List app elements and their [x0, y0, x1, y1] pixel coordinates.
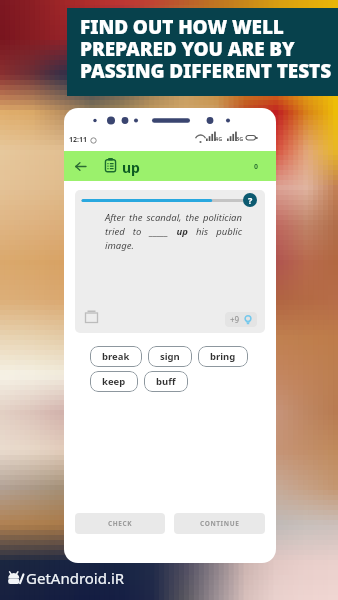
staticText: GetAndroid.iR: [26, 568, 125, 588]
staticText: sign: [160, 350, 180, 363]
staticText: break: [102, 350, 130, 363]
staticText: 4G: [215, 135, 223, 142]
button[interactable]: Help: [243, 193, 257, 207]
button[interactable]: keep: [90, 371, 138, 392]
button[interactable]: bring: [198, 346, 248, 367]
staticText: 12:11: [69, 135, 87, 145]
button[interactable]: +9: [225, 312, 257, 327]
staticText: After the scandal, the politician tried …: [105, 211, 242, 252]
button[interactable]: CONTINUE: [174, 513, 265, 534]
button[interactable]: CHECK: [75, 513, 165, 534]
staticText: keep: [102, 375, 126, 388]
staticText: PASSING DIFFERENT TESTS: [80, 58, 332, 84]
button[interactable]: break: [90, 346, 142, 367]
staticText: CHECK: [108, 519, 133, 528]
button[interactable]: Back: [72, 158, 88, 174]
staticText: +9: [230, 314, 240, 325]
staticText: CONTINUE: [200, 519, 240, 528]
staticText: ?: [248, 194, 253, 206]
staticText: 0: [254, 162, 259, 172]
staticText: 3G: [236, 135, 244, 142]
staticText: PREPARED YOU ARE BY: [80, 36, 295, 62]
staticText: bring: [210, 350, 236, 363]
staticText: FIND OUT HOW WELL: [80, 14, 284, 40]
staticText: up: [122, 158, 140, 177]
button[interactable]: sign: [148, 346, 192, 367]
staticText: buff: [156, 375, 176, 388]
button[interactable]: buff: [144, 371, 188, 392]
